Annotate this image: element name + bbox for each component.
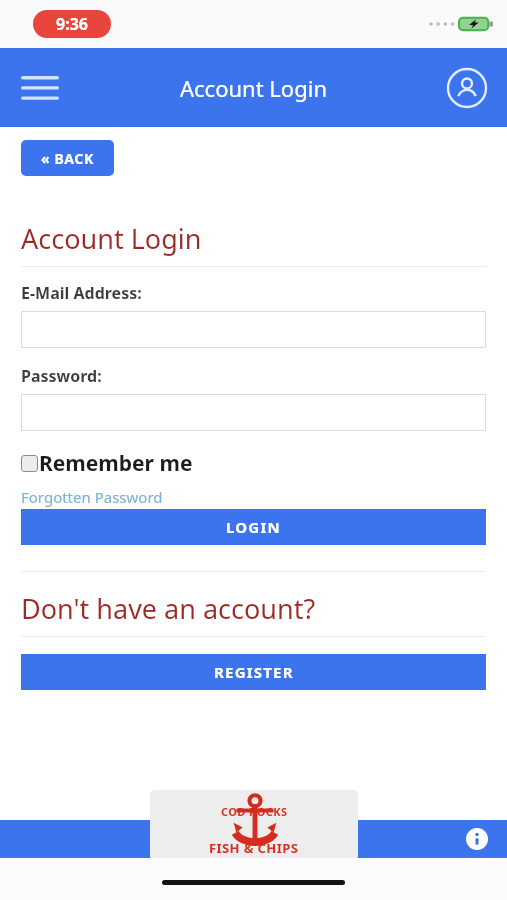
staticText: Don't have an account? [21,590,316,627]
button[interactable] [21,311,486,348]
staticText: LOGIN [226,517,281,537]
button[interactable] [21,394,486,431]
staticText: COD ROCKS [221,804,288,819]
staticText: 9:36 [56,13,88,35]
button[interactable]: Open navigation menu [10,63,70,113]
button[interactable]: Information [447,820,507,858]
staticText: REGISTER [214,662,294,682]
staticText: Password: [21,365,102,387]
button[interactable]: « BACK [21,140,114,176]
button[interactable]: Forgotten Password [21,487,163,507]
button[interactable]: COD ROCKS [150,790,358,862]
staticText: FISH & CHIPS [209,839,299,857]
staticText: Remember me [39,449,193,478]
staticText: Account Login [21,220,202,257]
staticText: E-Mail Address: [21,282,142,304]
staticText: COD ROCKS [221,804,288,819]
staticText: Account Login [180,73,327,103]
button[interactable]: LOGIN [21,509,486,545]
staticText: Forgotten Password [21,487,163,507]
button[interactable]: Remember me [21,449,193,478]
staticText: FISH & CHIPS [209,839,299,857]
staticText: « BACK [41,149,94,168]
button[interactable]: REGISTER [21,654,486,690]
button[interactable]: COD ROCKS [150,790,358,862]
button[interactable]: Account [441,62,493,114]
